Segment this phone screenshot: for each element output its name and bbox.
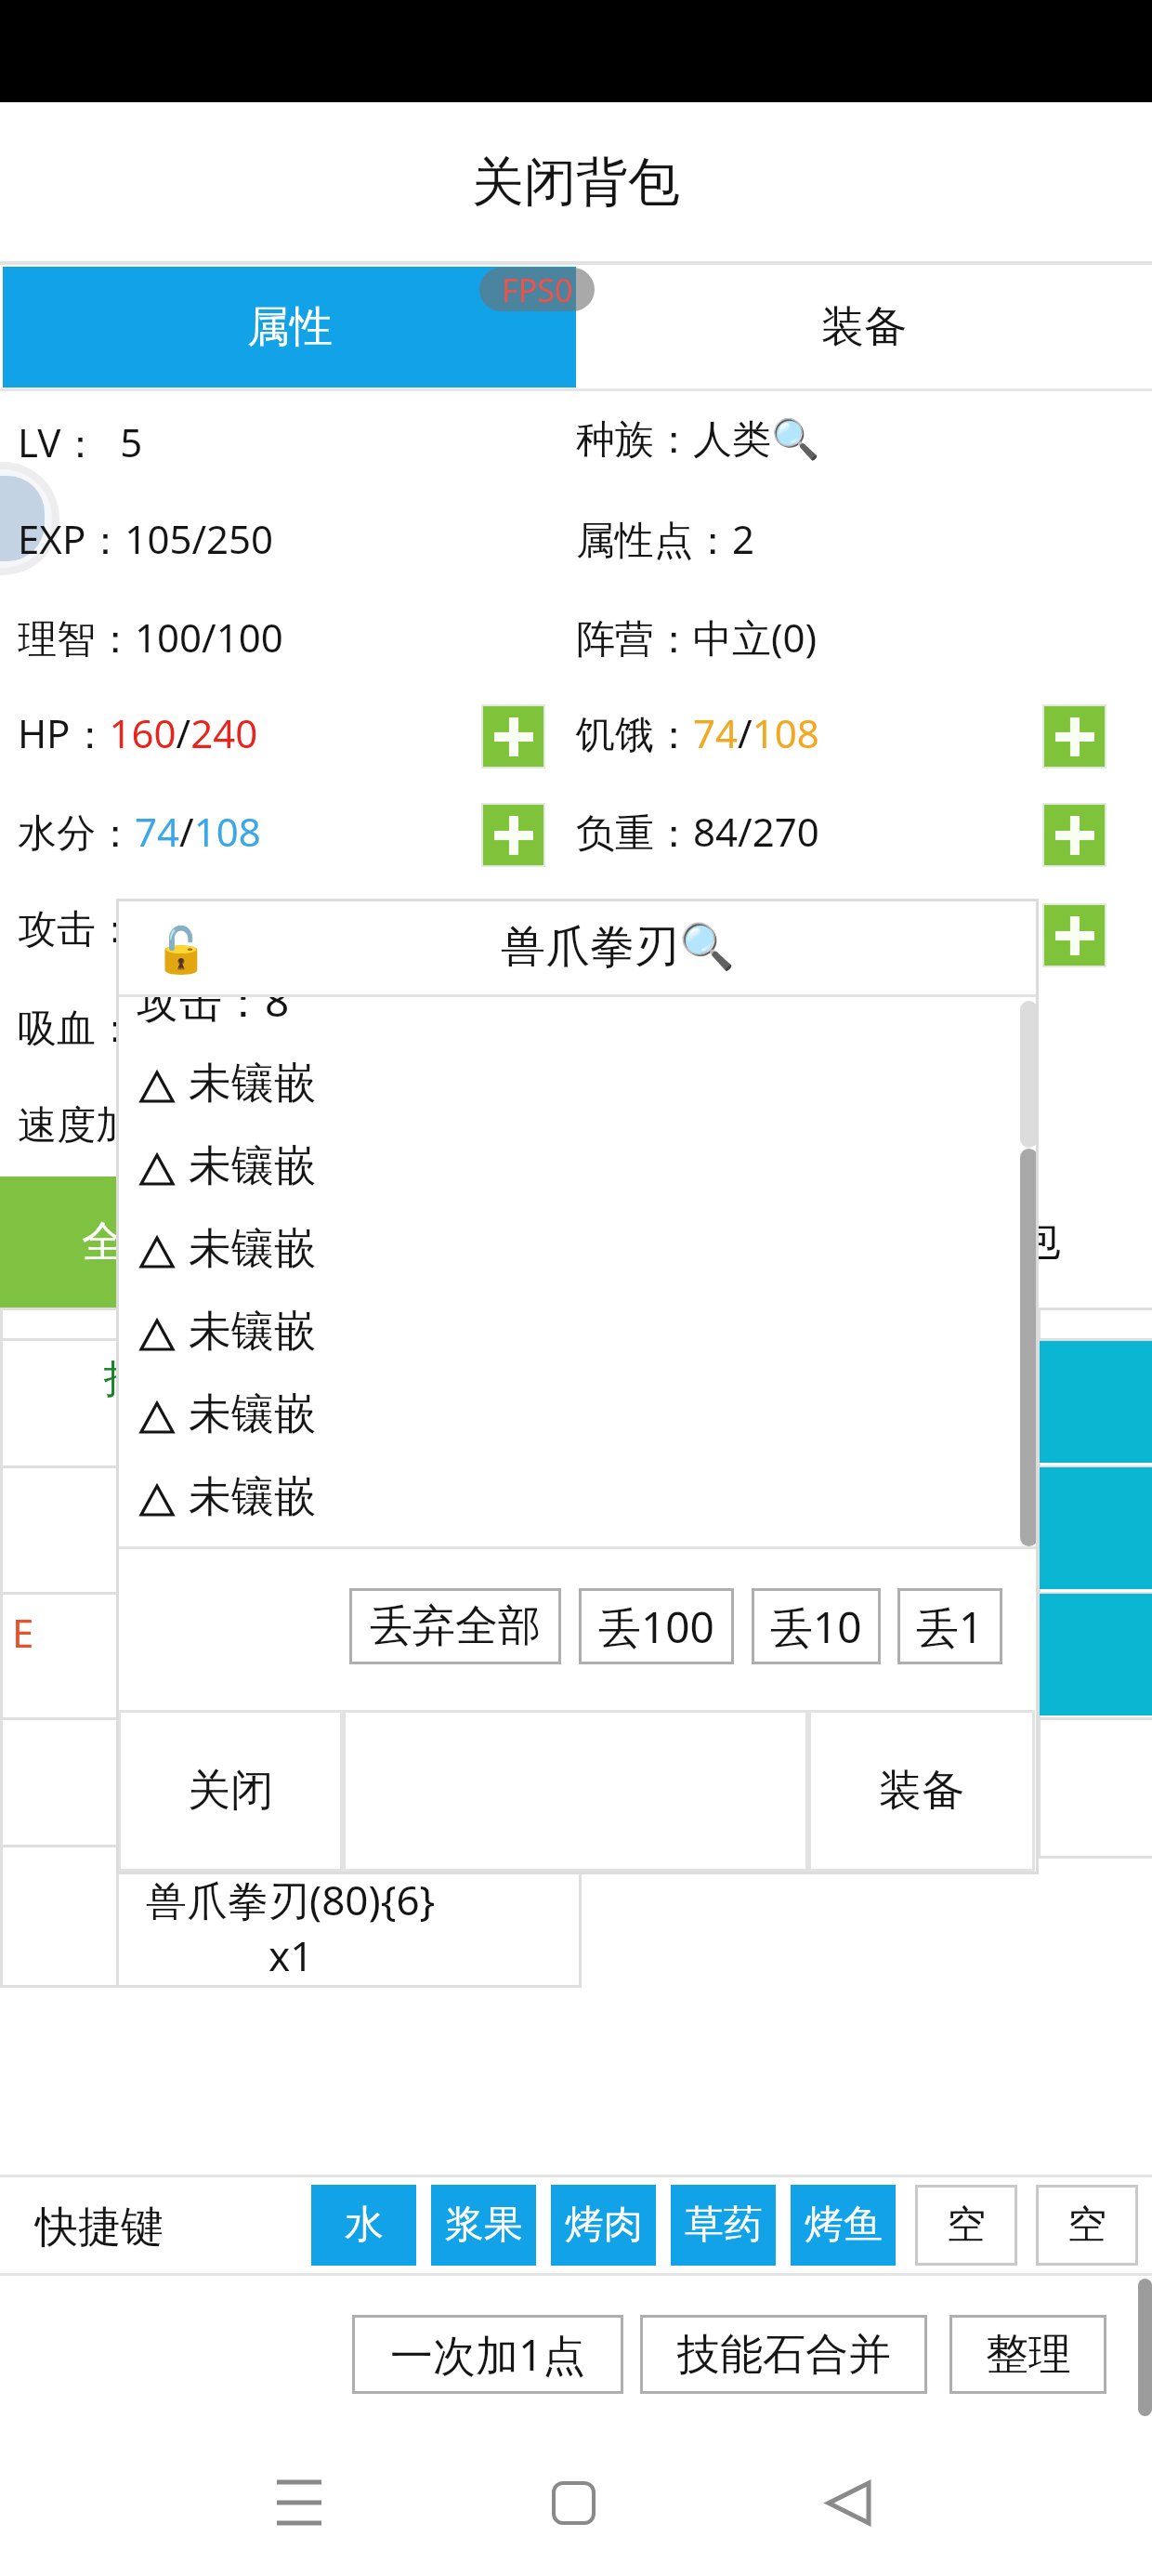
button[interactable]: 未镶嵌 bbox=[116, 1047, 1039, 1127]
staticText: 装备 bbox=[879, 1764, 964, 1818]
button[interactable]: 技能石合并 bbox=[640, 2315, 927, 2394]
button[interactable]: 未镶嵌 bbox=[116, 1295, 1039, 1375]
staticText: 攻击：8 bbox=[137, 997, 290, 1030]
button[interactable]: Add attribute point bbox=[1042, 803, 1106, 867]
button[interactable]: Add attribute point bbox=[1042, 704, 1106, 769]
staticText: 水分：74/108 bbox=[18, 805, 261, 858]
button[interactable]: 关闭 bbox=[118, 1710, 343, 1872]
staticText: 种族：人类🔍 bbox=[576, 415, 820, 465]
staticText: 技能石合并 bbox=[677, 2328, 891, 2382]
staticText: 理智：100/100 bbox=[18, 611, 283, 664]
staticText: 兽爪拳刃(80){6} bbox=[146, 1872, 436, 1927]
staticText: 吸血： bbox=[18, 1005, 135, 1054]
staticText: 属性点：2 bbox=[576, 512, 755, 565]
button[interactable]: 一次加1点 bbox=[352, 2315, 623, 2394]
staticText: EXP：105/250 bbox=[18, 512, 274, 565]
staticText: 烤鱼 bbox=[805, 2201, 883, 2250]
staticText: 空 bbox=[947, 2201, 986, 2250]
staticText: E bbox=[12, 1606, 34, 1659]
staticText: 阵营：中立(0) bbox=[576, 611, 818, 664]
button[interactable]: 空 bbox=[1036, 2185, 1138, 2266]
staticText: 烤肉 bbox=[565, 2201, 643, 2250]
staticText: 空 bbox=[1067, 2201, 1106, 2250]
button[interactable]: 装备 bbox=[808, 1710, 1035, 1872]
staticText: 兽爪拳刃🔍 bbox=[501, 919, 735, 975]
staticText: x1 bbox=[268, 1927, 314, 1983]
staticText: 整理 bbox=[986, 2328, 1071, 2382]
button[interactable]: Equipped item 2 bbox=[1040, 1467, 1152, 1589]
staticText: 未镶嵌 bbox=[189, 1305, 317, 1359]
button[interactable]: 装备 bbox=[576, 267, 1152, 388]
staticText: 未镶嵌 bbox=[189, 1139, 317, 1193]
staticText: 快捷键 bbox=[35, 2201, 164, 2254]
button[interactable]: Inventory slot 3 bbox=[3, 1595, 116, 1717]
staticText: LV： 5 bbox=[18, 415, 143, 468]
button[interactable]: Inventory slot 1 bbox=[3, 1341, 116, 1464]
staticText: 丢弃全部 bbox=[370, 1599, 541, 1653]
staticText: 浆果 bbox=[445, 2201, 523, 2250]
button[interactable]: 未镶嵌 bbox=[116, 1213, 1039, 1293]
staticText: FPS0 bbox=[502, 269, 573, 311]
button[interactable]: 全部 bbox=[0, 1176, 223, 1308]
staticText: 草药 bbox=[685, 2201, 763, 2250]
staticText: 攻击： bbox=[18, 905, 135, 954]
staticText: 负重：84/270 bbox=[576, 805, 819, 858]
staticText: 未镶嵌 bbox=[189, 1057, 317, 1111]
staticText: 一次加1点 bbox=[390, 2325, 586, 2384]
button[interactable]: Home bbox=[522, 2451, 624, 2554]
button[interactable]: Add attribute point bbox=[481, 704, 545, 769]
button[interactable]: 未镶嵌 bbox=[116, 1378, 1039, 1458]
staticText: 🔓 bbox=[153, 924, 209, 976]
staticText: 包 bbox=[1018, 1214, 1061, 1268]
staticText: 丢100 bbox=[598, 1597, 714, 1656]
staticText: 丢10 bbox=[770, 1597, 862, 1656]
button[interactable]: 浆果 bbox=[431, 2185, 536, 2266]
staticText: 关闭 bbox=[188, 1764, 273, 1818]
button[interactable]: Add attribute point bbox=[481, 803, 545, 867]
staticText: 水 bbox=[345, 2201, 384, 2250]
button[interactable]: 丢10 bbox=[752, 1588, 881, 1664]
button[interactable]: 丢1 bbox=[897, 1588, 1002, 1664]
button[interactable]: 水 bbox=[311, 2185, 416, 2266]
button[interactable]: 整理 bbox=[949, 2315, 1106, 2394]
button[interactable]: 空 bbox=[915, 2185, 1017, 2266]
staticText: 关闭背包 bbox=[472, 150, 680, 216]
staticText: HP：160/240 bbox=[18, 706, 258, 759]
staticText: 属性 bbox=[247, 300, 333, 354]
button[interactable]: Add attribute point bbox=[1042, 903, 1106, 967]
staticText: 速度加 bbox=[18, 1101, 135, 1150]
staticText: 丢1 bbox=[916, 1597, 984, 1656]
button[interactable]: 属性 bbox=[3, 267, 576, 388]
button[interactable]: 兽爪拳刃(80){6} bbox=[3, 1869, 579, 1985]
button[interactable]: Recents menu bbox=[248, 2451, 350, 2554]
staticText: 打 bbox=[104, 1355, 143, 1404]
staticText: 全部 bbox=[82, 1216, 167, 1269]
button[interactable]: 丢100 bbox=[579, 1588, 734, 1664]
button[interactable]: 烤鱼 bbox=[791, 2185, 896, 2266]
button[interactable]: 关闭背包 bbox=[0, 102, 1152, 262]
staticText: 未镶嵌 bbox=[189, 1387, 317, 1441]
staticText: 装备 bbox=[821, 300, 907, 354]
button[interactable]: 草药 bbox=[671, 2185, 776, 2266]
button[interactable]: 未镶嵌 bbox=[116, 1130, 1039, 1210]
button[interactable]: Back bbox=[798, 2451, 900, 2554]
button[interactable]: 未镶嵌 bbox=[116, 1461, 1039, 1541]
button[interactable]: 烤肉 bbox=[551, 2185, 656, 2266]
staticText: 饥饿：74/108 bbox=[576, 706, 819, 759]
staticText: 未镶嵌 bbox=[189, 1470, 317, 1524]
staticText: 未镶嵌 bbox=[189, 1222, 317, 1276]
button[interactable]: 丢弃全部 bbox=[349, 1588, 561, 1664]
